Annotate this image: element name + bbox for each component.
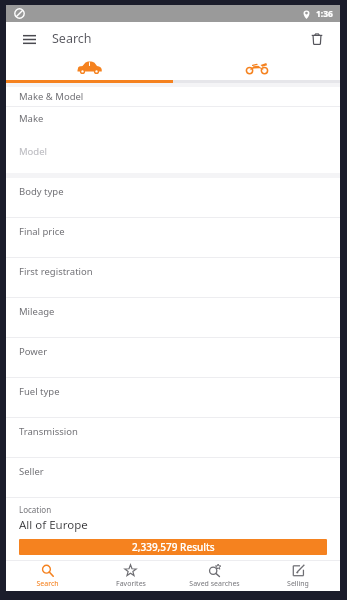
staticText: Seller xyxy=(19,465,44,478)
staticText: Final price xyxy=(19,225,65,238)
staticText: First registration xyxy=(19,265,93,278)
button[interactable]: Power xyxy=(6,338,340,377)
button[interactable]: Location xyxy=(6,498,340,536)
staticText: 2,339,579 Results xyxy=(132,540,215,554)
button[interactable]: Seller xyxy=(6,458,340,497)
button[interactable]: Open navigation menu xyxy=(16,26,42,52)
staticText: Favorites xyxy=(116,579,146,589)
staticText: 1:36 xyxy=(316,8,333,20)
staticText: Fuel type xyxy=(19,385,60,398)
staticText: Search xyxy=(36,579,59,589)
staticText: Selling xyxy=(287,579,309,589)
button[interactable]: Model xyxy=(6,140,340,173)
button[interactable]: Body type xyxy=(6,178,340,217)
staticText: Saved searches xyxy=(189,579,240,589)
staticText: Model xyxy=(19,145,48,158)
staticText: Location xyxy=(19,504,52,515)
staticText: Make & Model xyxy=(19,90,84,103)
button[interactable]: Final price xyxy=(6,218,340,257)
button[interactable]: Delete search xyxy=(304,26,330,52)
staticText: All of Europe xyxy=(19,517,88,533)
button[interactable]: Selling xyxy=(256,561,340,591)
button[interactable]: Cars tab xyxy=(6,55,173,80)
staticText: Transmission xyxy=(19,425,78,438)
button[interactable]: Fuel type xyxy=(6,378,340,417)
button[interactable]: Make xyxy=(6,107,340,140)
button[interactable]: Make & Model xyxy=(6,87,340,106)
staticText: Mileage xyxy=(19,305,55,318)
staticText: Body type xyxy=(19,185,64,198)
staticText: Power xyxy=(19,345,48,358)
button[interactable]: Transmission xyxy=(6,418,340,457)
staticText: Make xyxy=(19,112,44,125)
button[interactable]: Motorcycles tab xyxy=(173,55,340,80)
button[interactable]: Saved searches xyxy=(172,561,256,591)
staticText: Search xyxy=(52,30,92,47)
button[interactable]: Mileage xyxy=(6,298,340,337)
button[interactable]: Search xyxy=(6,561,89,591)
button[interactable]: First registration xyxy=(6,258,340,297)
button[interactable]: Favorites xyxy=(89,561,172,591)
button[interactable]: 2,339,579 Results xyxy=(19,539,327,555)
